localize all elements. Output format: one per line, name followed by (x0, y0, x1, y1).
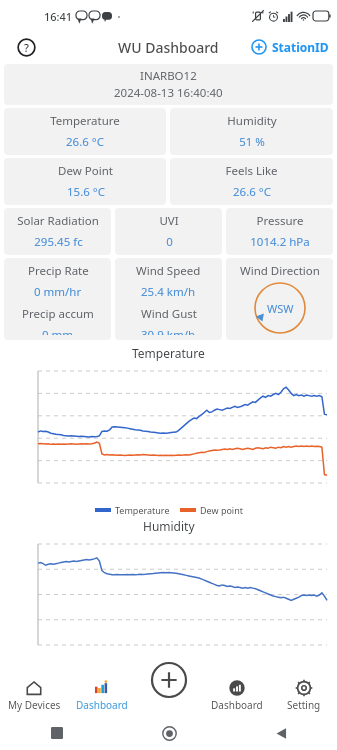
staticText: Dew Point (58, 163, 113, 179)
staticText: Temperature (115, 504, 170, 516)
staticText: 51 % (239, 134, 265, 150)
staticText: 2024-08-13 16:40:40 (114, 85, 223, 101)
staticText: Setting (287, 698, 321, 712)
button[interactable]: Add (150, 661, 188, 699)
button[interactable]: Recents (44, 720, 70, 746)
button[interactable]: Dashboard (68, 676, 136, 716)
button[interactable]: Home (156, 720, 182, 746)
staticText: Solar Radiation (17, 213, 99, 229)
button[interactable]: Dew Point (4, 158, 166, 205)
staticText: Wind Direction (240, 263, 320, 279)
button[interactable]: Dashboard (203, 676, 270, 716)
button[interactable]: Help (12, 33, 40, 61)
staticText: 0 mm (42, 327, 74, 335)
button[interactable]: Solar Radiation (4, 208, 111, 255)
button[interactable]: StationID (251, 39, 329, 55)
staticText: UVI (159, 213, 179, 229)
staticText: Precip accum (22, 306, 94, 322)
staticText: 0 mm/hr (34, 284, 82, 300)
staticText: Dashboard (211, 698, 263, 712)
button[interactable]: Precip Rate (4, 258, 111, 340)
button[interactable]: Humidity (170, 108, 333, 155)
staticText: 26.6 °C (233, 184, 271, 200)
button[interactable]: Wind Direction (226, 258, 333, 340)
button[interactable]: Setting (270, 676, 337, 716)
staticText: 25.4 km/h (141, 284, 196, 300)
staticText: Temperature (50, 113, 120, 129)
button[interactable]: My Devices (0, 676, 68, 716)
staticText: INARBO12 (140, 68, 197, 84)
staticText: 26.6 °C (66, 134, 104, 150)
staticText: 30.9 km/h (141, 327, 196, 335)
button[interactable]: Feels Like (170, 158, 333, 205)
staticText: 15.6 °C (67, 184, 105, 200)
staticText: Humidity (143, 518, 195, 534)
staticText: Precip Rate (28, 263, 89, 279)
button[interactable]: Back (268, 720, 294, 746)
staticText: ? (24, 40, 29, 55)
staticText: 295.45 fc (34, 234, 83, 250)
button[interactable]: UVI (115, 208, 222, 255)
button[interactable]: INARBO12 (4, 64, 333, 105)
staticText: Pressure (256, 213, 304, 229)
staticText: WU Dashboard (118, 38, 219, 57)
staticText: 0 (166, 234, 173, 250)
staticText: Dew point (200, 504, 243, 516)
staticText: My Devices (8, 698, 61, 712)
button[interactable]: Pressure (226, 208, 333, 255)
staticText: WSW (267, 301, 294, 316)
staticText: Temperature (132, 345, 205, 361)
button[interactable]: Wind Speed (115, 258, 222, 340)
staticText: Wind Speed (136, 263, 201, 279)
staticText: 1014.2 hPa (250, 234, 310, 250)
staticText: Feels Like (225, 163, 278, 179)
staticText: Humidity (227, 113, 277, 129)
staticText: Wind Gust (141, 306, 197, 322)
button[interactable]: Temperature (4, 108, 166, 155)
staticText: 16:41 (44, 9, 73, 24)
staticText: StationID (272, 39, 329, 55)
staticText: Dashboard (76, 698, 128, 712)
